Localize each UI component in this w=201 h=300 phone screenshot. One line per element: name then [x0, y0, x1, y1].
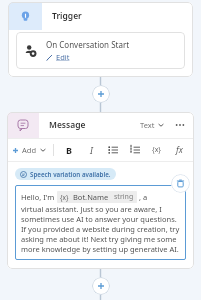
staticText: more knowledge by setting up generative … [21, 244, 179, 254]
button[interactable]: Italic [83, 142, 99, 158]
button[interactable]: Add [12, 145, 46, 155]
button[interactable]: Bold [61, 142, 77, 158]
button[interactable]: Numbered list [127, 142, 143, 158]
staticText: virtual assistant. Just so you are aware… [21, 204, 162, 214]
staticText: sometimes use AI to answer your question… [21, 214, 177, 224]
button[interactable]: Add node [92, 277, 110, 295]
button[interactable]: Speech variation available. [20, 170, 111, 178]
button[interactable]: Trigger [8, 2, 193, 77]
staticText: On Conversation Start [46, 39, 130, 50]
staticText: Edit [56, 52, 70, 62]
button[interactable]: Text [138, 120, 166, 130]
button[interactable]: Bulleted list [105, 142, 121, 158]
staticText: fx [176, 144, 183, 156]
staticText: Message [49, 119, 86, 131]
button[interactable]: Insert variable [149, 142, 165, 158]
staticText: Trigger [52, 10, 82, 22]
staticText: string [114, 192, 134, 202]
staticText: B [66, 144, 72, 156]
button[interactable]: On Conversation Start [24, 39, 177, 62]
button[interactable]: More options [172, 117, 188, 133]
staticText: Text [140, 120, 155, 130]
button[interactable]: Add node [92, 85, 110, 103]
staticText: If you provided a website during creatio… [21, 224, 180, 234]
button[interactable]: Edit [46, 52, 70, 62]
staticText: Speech variation available. [30, 170, 111, 178]
staticText: {x} [152, 145, 162, 155]
staticText: Add [22, 145, 37, 155]
button[interactable]: Message [7, 112, 194, 269]
button[interactable]: Formula [171, 142, 187, 158]
staticText: {x} [60, 193, 69, 202]
button[interactable]: Delete [171, 174, 190, 193]
staticText: I [90, 144, 93, 156]
button[interactable]: Hello, I'm [21, 191, 180, 254]
staticText: Hello, I'm [21, 192, 57, 202]
staticText: asking me about it! Next try giving me s… [21, 234, 177, 244]
staticText: Bot.Name [73, 192, 109, 202]
staticText: , a [137, 192, 148, 202]
